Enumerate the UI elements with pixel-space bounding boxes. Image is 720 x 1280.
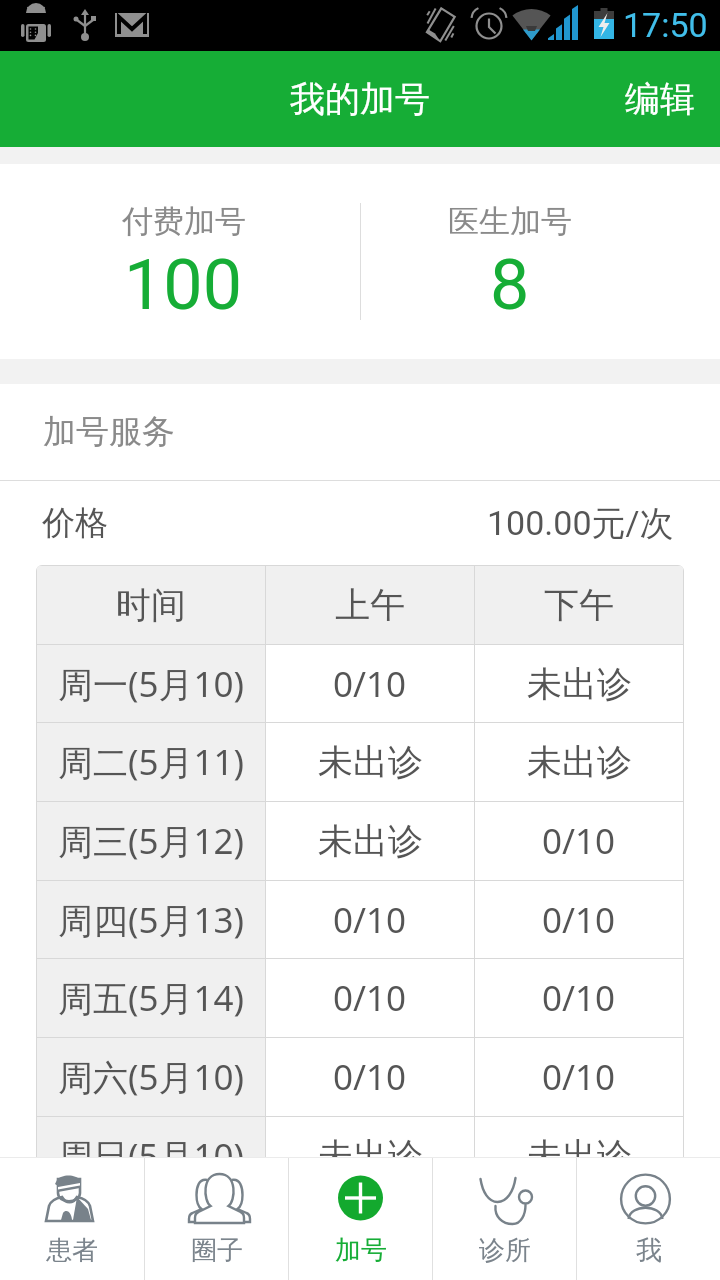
button[interactable]: Circle [145, 1158, 288, 1280]
staticText: 我 [636, 1234, 662, 1267]
staticText: 未出诊 [527, 740, 632, 784]
staticText: 上午 [335, 583, 405, 627]
button[interactable]: 付费加号 [0, 164, 367, 359]
staticText: 0/10 [333, 974, 407, 1022]
staticText: 患者 [46, 1234, 98, 1267]
staticText: 0/10 [542, 1053, 616, 1101]
staticText: 周日(5月10) [58, 1132, 245, 1180]
button[interactable]: Clinic [433, 1158, 576, 1280]
staticText: 医生加号 [448, 202, 572, 241]
staticText: 周五(5月14) [58, 974, 245, 1022]
button[interactable]: 编辑 [603, 51, 720, 147]
staticText: 周一(5月10) [58, 660, 245, 708]
staticText: 周六(5月10) [58, 1053, 245, 1101]
staticText: 8 [490, 244, 530, 326]
staticText: 诊所 [479, 1234, 531, 1267]
staticText: 0/10 [333, 660, 407, 708]
staticText: 17:50 [623, 5, 708, 45]
staticText: 未出诊 [318, 1134, 423, 1178]
staticText: 时间 [116, 583, 186, 627]
staticText: 周四(5月13) [58, 896, 245, 944]
staticText: 100.00元/次 [487, 502, 674, 545]
staticText: 未出诊 [318, 740, 423, 784]
staticText: 编辑 [625, 77, 695, 121]
button[interactable]: Add appointment [289, 1158, 432, 1280]
staticText: 0/10 [542, 896, 616, 944]
staticText: 下午 [544, 583, 614, 627]
staticText: 圈子 [191, 1234, 243, 1267]
staticText: 我的加号 [290, 77, 430, 121]
staticText: 100 [124, 244, 243, 326]
button[interactable]: Me [577, 1158, 720, 1280]
staticText: 加号 [335, 1234, 387, 1267]
staticText: 未出诊 [318, 819, 423, 863]
staticText: 0/10 [542, 817, 616, 865]
staticText: 周三(5月12) [58, 817, 245, 865]
staticText: 周二(5月11) [58, 738, 245, 786]
staticText: 0/10 [542, 974, 616, 1022]
staticText: 加号服务 [43, 411, 175, 453]
staticText: 价格 [42, 502, 108, 544]
staticText: 未出诊 [527, 662, 632, 706]
button[interactable]: 医生加号 [300, 164, 720, 359]
button[interactable]: 加号服务 [0, 384, 720, 480]
button[interactable]: Patients [0, 1158, 144, 1280]
staticText: 0/10 [333, 896, 407, 944]
staticText: 付费加号 [122, 202, 246, 241]
staticText: 未出诊 [527, 1134, 632, 1178]
staticText: 0/10 [333, 1053, 407, 1101]
